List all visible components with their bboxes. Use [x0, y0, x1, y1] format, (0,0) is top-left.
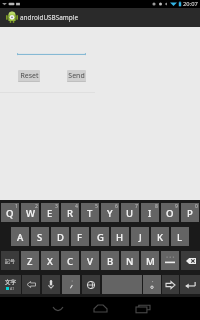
button[interactable]: C [61, 251, 79, 270]
staticText: L [177, 231, 183, 244]
staticText: D [57, 231, 64, 244]
staticText: U [126, 207, 134, 220]
button[interactable]: S [31, 227, 49, 246]
staticText: S [37, 231, 43, 244]
button[interactable]: K [151, 227, 169, 246]
button[interactable]: F [71, 227, 89, 246]
button[interactable]: Backspace [181, 251, 200, 270]
button[interactable]: Voice input [42, 275, 60, 294]
staticText: androidUSBSample [20, 13, 79, 22]
staticText: 6 [115, 203, 118, 210]
staticText: H [116, 231, 124, 244]
staticText: 20:07 [183, 0, 198, 8]
staticText: 9 [175, 203, 178, 210]
staticText: X [47, 255, 53, 268]
button[interactable]: Q [1, 203, 19, 222]
button[interactable]: B [101, 251, 119, 270]
staticText: Reset [20, 71, 39, 81]
button[interactable]: I [141, 203, 159, 222]
button[interactable]: Enter [180, 275, 200, 294]
staticText: J [139, 231, 142, 244]
button[interactable]: Next [162, 275, 179, 294]
button[interactable]: W [21, 203, 39, 222]
button[interactable]: X [41, 251, 59, 270]
button[interactable]: Z [21, 251, 39, 270]
button[interactable]: Back [43, 297, 72, 320]
button[interactable]: Comma [62, 275, 80, 294]
staticText: Y [107, 207, 113, 220]
staticText: C [67, 255, 74, 268]
button[interactable]: Dash [161, 251, 179, 270]
button[interactable]: Period [143, 275, 161, 294]
staticText: 5 [95, 203, 98, 210]
button[interactable]: Back [22, 275, 40, 294]
staticText: M [146, 255, 155, 268]
button[interactable]: T [81, 203, 99, 222]
staticText: 2 [35, 203, 38, 210]
staticText: 4 [75, 203, 78, 210]
staticText: Z [27, 255, 33, 268]
staticText: Q [6, 207, 14, 220]
button[interactable]: P [181, 203, 199, 222]
button[interactable]: G [91, 227, 109, 246]
button[interactable]: H [111, 227, 129, 246]
staticText: B [107, 255, 114, 268]
staticText: R [67, 207, 74, 220]
staticText: O [166, 207, 174, 220]
button[interactable]: L [171, 227, 189, 246]
button[interactable]: A [11, 227, 29, 246]
staticText: A [17, 231, 24, 244]
button[interactable]: R [61, 203, 79, 222]
button[interactable]: Language [82, 275, 100, 294]
button[interactable]: Send [67, 70, 86, 82]
button[interactable]: E [41, 203, 59, 222]
staticText: E [47, 207, 53, 220]
staticText: 記号 [5, 258, 15, 264]
button[interactable]: Home [86, 297, 114, 320]
button[interactable]: U [121, 203, 139, 222]
staticText: G [97, 231, 104, 244]
button[interactable]: Symbols [1, 251, 19, 270]
staticText: I [148, 207, 152, 220]
staticText: Send [68, 71, 85, 81]
staticText: 8 [155, 203, 158, 210]
button[interactable]: Reset [18, 70, 40, 82]
button[interactable]: M [141, 251, 159, 270]
staticText: 文字 [5, 279, 16, 286]
staticText: 3 [55, 203, 58, 210]
staticText: N [126, 255, 134, 268]
staticText: W [26, 207, 35, 220]
staticText: K [157, 231, 164, 244]
staticText: P [187, 207, 193, 220]
staticText: V [87, 255, 93, 268]
button[interactable]: Recent apps [128, 297, 157, 320]
button[interactable]: Y [101, 203, 119, 222]
staticText: F [77, 231, 83, 244]
button[interactable]: O [161, 203, 179, 222]
button[interactable]: Input method [0, 275, 21, 294]
staticText: 0 [195, 203, 198, 210]
staticText: 7 [135, 203, 138, 210]
button[interactable]: J [131, 227, 149, 246]
button[interactable]: D [51, 227, 69, 246]
staticText: 1 [15, 203, 18, 210]
button[interactable]: N [121, 251, 139, 270]
button[interactable]: V [81, 251, 99, 270]
staticText: A1 [10, 286, 15, 291]
staticText: T [87, 207, 93, 220]
